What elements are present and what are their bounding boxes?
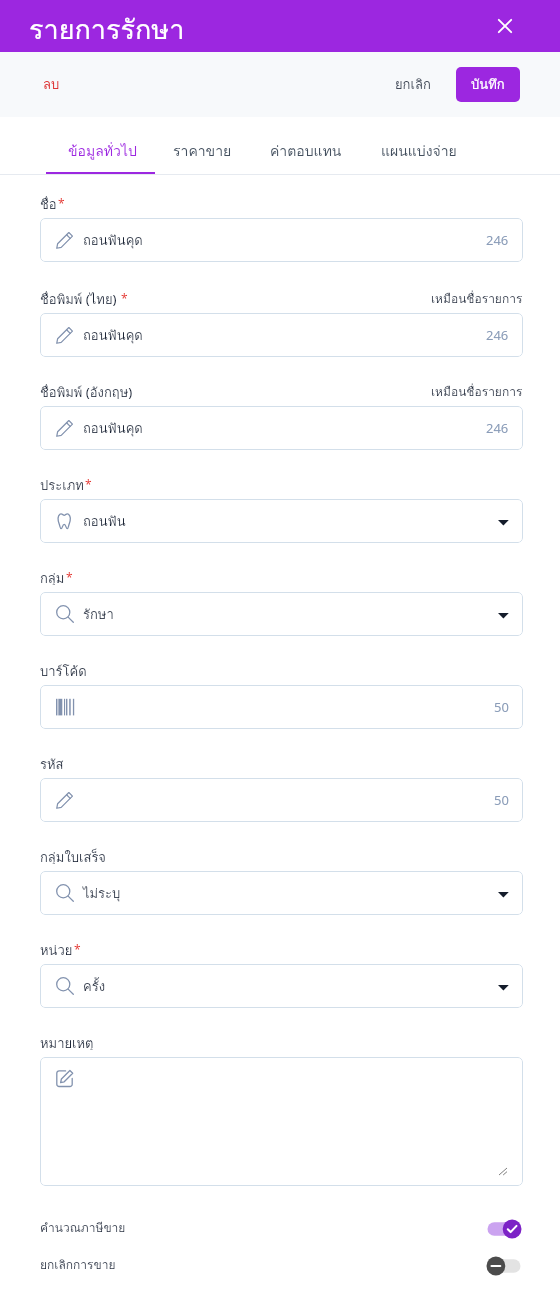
- button[interactable]: แผนแบ่งจ่าย: [380, 117, 458, 175]
- staticText: *: [121, 290, 128, 306]
- staticText: *: [74, 941, 81, 957]
- staticText: ราคาขาย: [173, 140, 232, 162]
- staticText: ข้อมูลทั่วไป: [68, 140, 137, 162]
- button[interactable]: บันทึก: [456, 67, 520, 102]
- staticText: แผนแบ่งจ่าย: [381, 140, 457, 162]
- button[interactable]: ถอนฟันคุด: [40, 313, 523, 357]
- staticText: ชื่อพิมพ์ (อังกฤษ): [40, 382, 133, 399]
- button[interactable]: ถอนฟันคุด: [40, 218, 523, 262]
- staticText: เหมือนชื่อรายการ: [431, 382, 523, 399]
- staticText: หน่วย: [40, 940, 73, 957]
- button[interactable]: ลบ: [35, 68, 68, 101]
- button[interactable]: Close: [488, 9, 522, 43]
- button[interactable]: รักษา: [40, 592, 523, 636]
- staticText: ประเภท: [40, 475, 84, 492]
- button[interactable]: ถอนฟันคุด: [40, 406, 523, 450]
- staticText: กลุ่ม: [40, 568, 65, 585]
- staticText: 50: [494, 698, 509, 716]
- staticText: รายการรักษา: [29, 8, 185, 51]
- button[interactable]: ถอนฟัน: [40, 499, 523, 543]
- staticText: *: [66, 569, 73, 585]
- staticText: คำนวณภาษีขาย: [40, 1218, 126, 1237]
- button[interactable]: Calculate sales tax, on: [486, 1218, 522, 1240]
- button[interactable]: ยกเลิก: [387, 68, 439, 101]
- staticText: 50: [494, 791, 509, 809]
- button[interactable]: ไม่ระบุ: [40, 871, 523, 915]
- staticText: 246: [486, 231, 509, 249]
- staticText: รหัส: [40, 754, 64, 771]
- button[interactable]: 50: [40, 685, 523, 729]
- staticText: ยกเลิก: [395, 74, 431, 95]
- staticText: เหมือนชื่อรายการ: [431, 289, 523, 306]
- staticText: ชื่อพิมพ์ (ไทย): [40, 289, 120, 306]
- button[interactable]: ข้อมูลทั่วไป: [67, 117, 138, 175]
- staticText: ถอนฟัน: [83, 511, 126, 532]
- button[interactable]: [40, 1057, 523, 1186]
- staticText: ค่าตอบแทน: [270, 140, 342, 162]
- staticText: 246: [486, 419, 509, 437]
- staticText: ลบ: [43, 74, 60, 95]
- staticText: ชื่อ: [40, 194, 57, 211]
- staticText: หมายเหตุ: [40, 1033, 94, 1050]
- staticText: ไม่ระบุ: [83, 883, 121, 904]
- button[interactable]: Cancel sale, off: [486, 1255, 522, 1277]
- staticText: กลุ่มใบเสร็จ: [40, 847, 106, 864]
- button[interactable]: ค่าตอบแทน: [269, 117, 343, 175]
- staticText: ถอนฟันคุด: [83, 230, 143, 251]
- staticText: บาร์โค้ด: [40, 661, 87, 678]
- staticText: 246: [486, 326, 509, 344]
- staticText: ครั้ง: [83, 976, 106, 997]
- staticText: ยกเลิกการขาย: [40, 1255, 116, 1274]
- staticText: *: [58, 195, 65, 211]
- button[interactable]: ราคาขาย: [172, 117, 233, 175]
- staticText: ถอนฟันคุด: [83, 325, 143, 346]
- staticText: บันทึก: [471, 74, 505, 95]
- button[interactable]: 50: [40, 778, 523, 822]
- button[interactable]: ครั้ง: [40, 964, 523, 1008]
- staticText: ถอนฟันคุด: [83, 418, 143, 439]
- staticText: รักษา: [83, 604, 114, 625]
- staticText: *: [85, 476, 92, 492]
